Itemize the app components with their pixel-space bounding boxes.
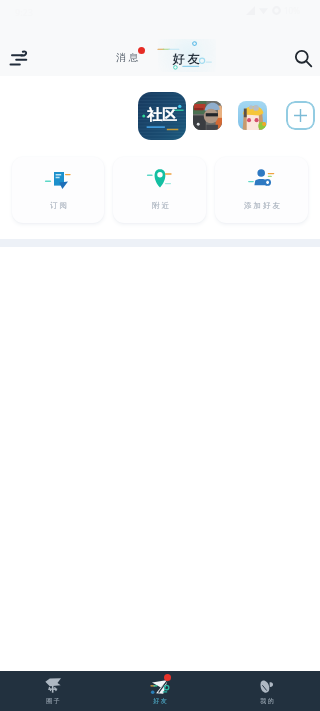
button[interactable]: 社区 bbox=[138, 92, 186, 140]
button[interactable]: Game bbox=[193, 101, 222, 130]
staticText: 好 友 bbox=[153, 697, 167, 705]
button[interactable]: Add bbox=[286, 101, 315, 130]
staticText: 圈 子 bbox=[46, 697, 60, 705]
staticText: 消 息 bbox=[116, 50, 139, 64]
button[interactable]: 添 加 好 友 bbox=[215, 157, 308, 223]
button[interactable]: 消 息 bbox=[111, 46, 143, 68]
button[interactable]: 好友 bbox=[158, 39, 216, 72]
staticText: 订 阅 bbox=[50, 200, 67, 210]
staticText: 附 近 bbox=[152, 200, 169, 210]
button[interactable]: 圈 子 bbox=[0, 671, 106, 711]
staticText: 添 加 好 友 bbox=[244, 200, 280, 210]
staticText: 好友 bbox=[171, 51, 201, 66]
button[interactable]: Search bbox=[288, 43, 318, 73]
button[interactable]: 订 阅 bbox=[12, 157, 104, 223]
button[interactable]: Game bbox=[238, 101, 267, 130]
button[interactable]: 附 近 bbox=[113, 157, 206, 223]
button[interactable]: 好 友 bbox=[106, 671, 213, 711]
staticText: 社区 bbox=[147, 106, 177, 125]
button[interactable]: Filter bbox=[5, 44, 33, 72]
button[interactable]: 我 的 bbox=[213, 671, 320, 711]
staticText: 我 的 bbox=[260, 697, 274, 705]
